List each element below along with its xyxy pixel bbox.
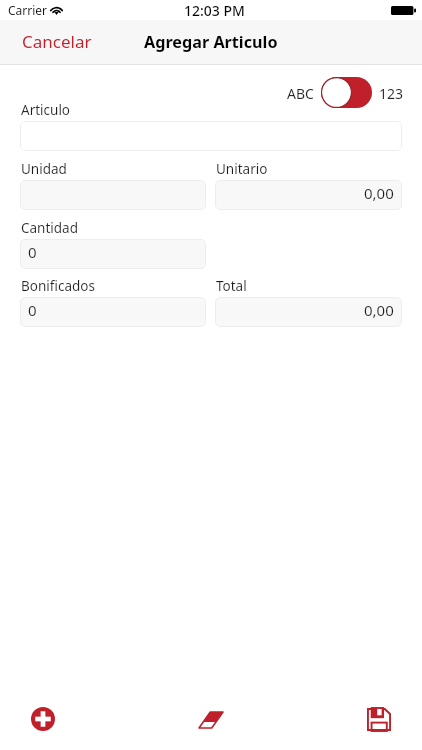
button[interactable]: Guardar [357, 697, 401, 741]
staticText: Articulo [21, 101, 71, 119]
other: Wi-Fi [50, 5, 63, 15]
staticText: Bonificados [21, 277, 95, 295]
staticText: 0,00 [364, 183, 394, 203]
button[interactable]: Agregar [21, 697, 65, 741]
staticText: 0 [28, 300, 37, 320]
button[interactable]: Borrar [189, 698, 233, 742]
button[interactable]: Cambiar entre ABC y 123 [321, 77, 372, 108]
staticText: 0,00 [364, 300, 394, 320]
staticText: ABC [287, 84, 314, 103]
button[interactable]: Articulo [20, 121, 402, 151]
button[interactable]: Bonificados [20, 297, 206, 327]
staticText: Unidad [21, 160, 67, 178]
button[interactable]: Total [215, 297, 402, 327]
staticText: 123 [379, 84, 404, 103]
staticText: Cantidad [21, 219, 78, 237]
button[interactable]: Unitario [215, 180, 402, 210]
button[interactable]: Cancelar [10, 24, 104, 59]
staticText: Total [216, 277, 247, 295]
staticText: Carrier [8, 2, 48, 18]
staticText: Agregar Articulo [144, 31, 278, 53]
other: Battery full [391, 6, 416, 15]
staticText: Cancelar [22, 30, 92, 53]
staticText: 12:03 PM [184, 1, 245, 20]
staticText: 0 [28, 242, 37, 262]
staticText: Unitario [216, 160, 268, 178]
button[interactable]: Cantidad [20, 239, 206, 269]
